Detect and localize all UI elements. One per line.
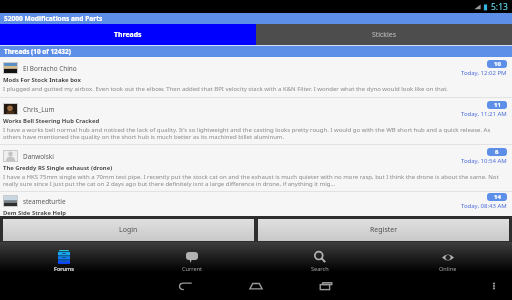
button[interactable]: Home [247,277,265,295]
button[interactable]: Forums [0,242,128,272]
staticText: Works Bell Steering Hub Cracked [3,117,100,125]
button[interactable]: 10 [0,57,512,97]
staticText: Danwolski [23,152,54,161]
staticText: El Borracho Chino [23,64,77,73]
staticText: Threads (10 of 12432) [4,47,71,56]
button[interactable]: S2000 Modifications and Parts [0,13,512,24]
staticText: The Greddy RS Single exhaust (drone) [3,164,113,172]
staticText: Today, 08:43 AM [461,202,507,210]
staticText: I have a HKS 75mm single with a 70mm tes… [3,173,507,188]
staticText: Chris_Lum [23,105,55,114]
button[interactable]: Online [384,242,512,272]
button[interactable]: Threads (10 of 12432) [0,46,512,57]
staticText: Today, 10:54 AM [461,157,507,165]
staticText: I have a works bell normal hub and notic… [3,126,507,141]
staticText: Stickies [372,30,396,39]
staticText: 10 [494,60,501,68]
staticText: Mods For Stock Intake box [3,76,81,84]
button[interactable]: Register [258,219,509,241]
button[interactable]: Back [177,277,195,295]
button[interactable]: 6 [0,145,512,191]
button[interactable]: Stickies [256,24,512,45]
button[interactable]: Current [128,242,256,272]
staticText: S2000 Modifications and Parts [4,14,103,23]
staticText: Today, 11:21 AM [461,110,507,118]
button[interactable]: Threads [0,24,256,45]
button[interactable]: 11 [0,98,512,144]
staticText: 6 [495,148,499,156]
staticText: Register [370,225,398,235]
staticText: Threads [114,30,142,39]
staticText: I plugged and gutted my airbox. Even too… [3,85,448,93]
staticText: 14 [494,193,501,201]
button[interactable]: Login [3,219,254,241]
staticText: steamedturtle [23,197,66,206]
staticText: Today, 12:02 PM [461,69,507,77]
staticText: Login [119,225,138,235]
button[interactable]: More options [489,281,499,291]
staticText: Forums [54,265,74,272]
staticText: Dem Side Strake Help [3,209,66,216]
staticText: 5:13 [491,1,508,13]
staticText: Search [311,265,329,272]
staticText: Online [439,265,457,272]
staticText: 11 [494,101,501,109]
staticText: Current [182,265,203,272]
button[interactable]: Search [256,242,384,272]
button[interactable]: Recents [317,277,335,295]
button[interactable]: 14 [0,192,512,216]
